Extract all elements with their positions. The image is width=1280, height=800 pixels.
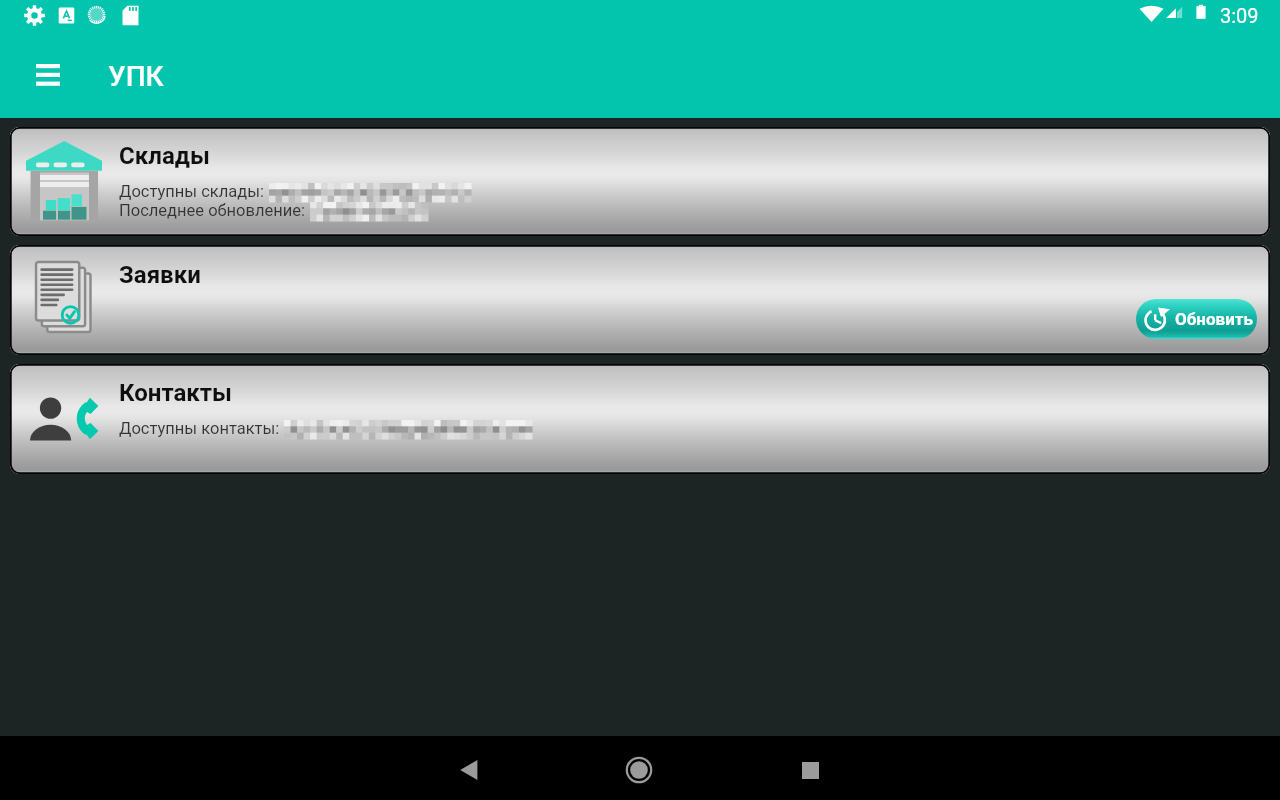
staticText: Последнее обновление: bbox=[119, 201, 310, 220]
staticText: Обновить bbox=[1175, 309, 1253, 329]
staticText: Контакты bbox=[119, 379, 232, 407]
button[interactable]: Заявки bbox=[10, 245, 1270, 355]
staticText: УПК bbox=[108, 60, 164, 93]
button[interactable]: Склады bbox=[10, 127, 1270, 236]
button[interactable]: Back bbox=[439, 740, 499, 800]
button[interactable]: Recent apps bbox=[780, 740, 840, 800]
staticText: 3:09 bbox=[1220, 4, 1259, 27]
button[interactable]: Home bbox=[609, 740, 669, 800]
button[interactable]: Open navigation menu bbox=[24, 52, 72, 100]
button[interactable]: Контакты bbox=[10, 364, 1270, 474]
button[interactable]: Обновить bbox=[1136, 299, 1257, 339]
staticText: Заявки bbox=[119, 261, 201, 289]
staticText: Доступны склады: bbox=[119, 182, 269, 201]
staticText: Склады bbox=[119, 142, 210, 170]
staticText: Доступны контакты: bbox=[119, 419, 284, 438]
